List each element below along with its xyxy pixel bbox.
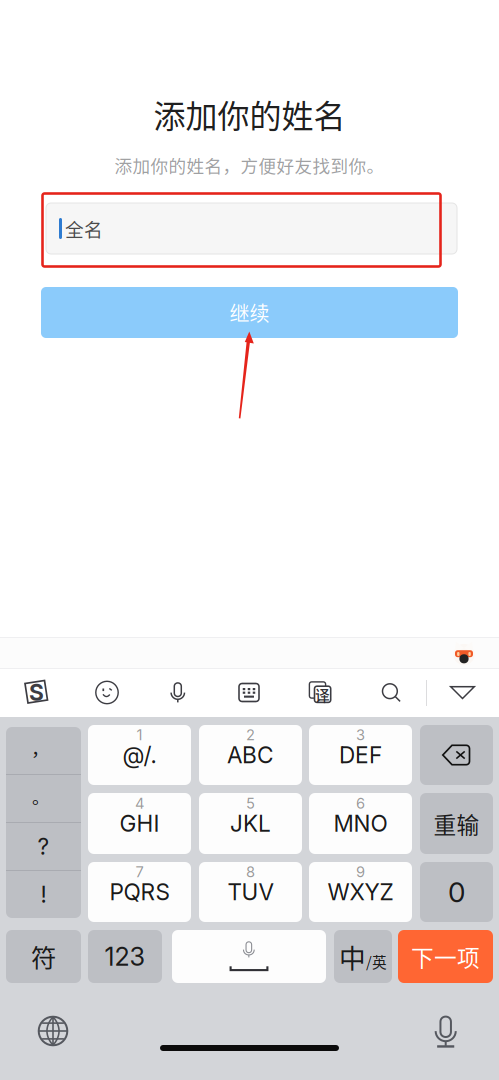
button[interactable]: Hide keyboard [426, 669, 498, 716]
button[interactable]: Space [172, 930, 326, 983]
button[interactable]: Delete [420, 725, 493, 785]
staticText: 8 [246, 863, 255, 881]
staticText: 123 [104, 941, 145, 972]
staticText: 全名 [65, 215, 103, 242]
staticText: 译 [315, 684, 330, 705]
staticText: GHI [119, 810, 159, 837]
staticText: 下一项 [411, 940, 480, 973]
button[interactable]: Search [355, 669, 426, 716]
staticText: 继续 [229, 298, 269, 327]
staticText: MNO [333, 810, 387, 837]
button[interactable]: 全名 [46, 203, 457, 254]
staticText: JKL [230, 810, 271, 837]
button[interactable]: 6 [309, 793, 412, 854]
button[interactable]: 3 [309, 725, 412, 785]
button[interactable]: 5 [199, 793, 302, 854]
staticText: ABC [227, 741, 274, 769]
button[interactable]: Symbols [6, 930, 81, 983]
button[interactable]: 继续 [41, 287, 458, 338]
staticText: ! [40, 881, 46, 908]
staticText: 0 [448, 875, 465, 909]
button[interactable]: 0 [420, 862, 493, 922]
button[interactable]: Translate [284, 669, 355, 716]
staticText: 添加你的姓名 [153, 91, 345, 137]
button[interactable]: Switch keyboard [23, 1011, 83, 1051]
button[interactable]: Sogou input settings [0, 669, 71, 716]
staticText: 3 [356, 726, 365, 744]
button[interactable]: 1 [88, 725, 191, 785]
staticText: /英 [366, 951, 387, 972]
button[interactable]: Numbers [88, 930, 162, 983]
staticText: PQRS [109, 878, 169, 906]
button[interactable]: 下一项 [398, 930, 493, 983]
button[interactable]: Punctuation [6, 727, 81, 918]
staticText: 2 [246, 726, 255, 744]
staticText: WXYZ [327, 878, 393, 906]
button[interactable]: Chinese English toggle [334, 930, 392, 983]
staticText: 5 [246, 795, 255, 812]
staticText: 重输 [433, 807, 479, 840]
staticText: @/. [122, 741, 156, 769]
button[interactable]: Emoji [71, 669, 142, 716]
button[interactable]: 7 [88, 862, 191, 922]
button[interactable]: 重输 [420, 793, 493, 854]
button[interactable]: 2 [199, 725, 302, 785]
button[interactable]: 9 [309, 862, 412, 922]
staticText: ? [37, 833, 49, 860]
button[interactable]: Dictation [416, 1009, 476, 1053]
staticText: S [29, 679, 44, 706]
staticText: 9 [356, 863, 365, 881]
button[interactable]: 4 [88, 793, 191, 854]
staticText: TUV [227, 878, 273, 906]
staticText: 4 [135, 795, 144, 812]
staticText: 符 [31, 938, 56, 975]
staticText: 中 [339, 937, 366, 976]
staticText: DEF [339, 741, 382, 769]
staticText: 1 [136, 726, 142, 744]
staticText: 添加你的姓名，方便好友找到你。 [114, 152, 384, 178]
staticText: 。 [32, 784, 49, 809]
staticText: 6 [356, 795, 365, 812]
button[interactable]: 8 [199, 862, 302, 922]
button[interactable]: Keyboard layout [213, 669, 284, 716]
button[interactable]: Voice input [142, 669, 213, 716]
staticText: ， [31, 734, 50, 761]
staticText: 7 [135, 863, 143, 881]
